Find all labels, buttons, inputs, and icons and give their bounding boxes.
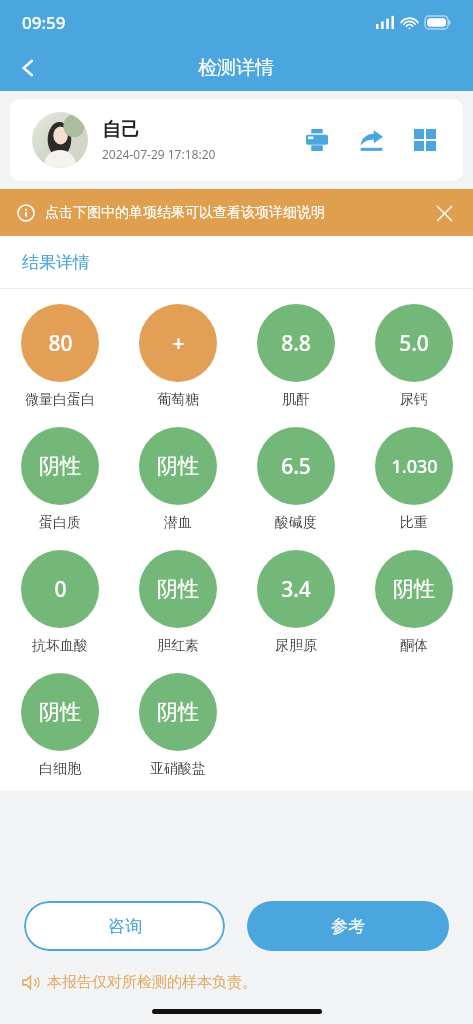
staticText: 1.030: [391, 454, 438, 479]
staticText: 微量白蛋白: [25, 391, 95, 409]
staticText: 5.0: [399, 329, 429, 358]
staticText: 咨询: [108, 916, 142, 937]
button[interactable]: 自己: [10, 99, 463, 181]
staticText: 阴性: [39, 453, 81, 479]
button[interactable]: 80: [0, 295, 119, 418]
button[interactable]: 8.8: [237, 295, 355, 418]
button[interactable]: 阴性: [0, 664, 119, 787]
button[interactable]: 6.5: [237, 418, 355, 541]
staticText: 结果详情: [22, 252, 90, 273]
button[interactable]: 1.030: [355, 418, 473, 541]
staticText: 参考: [331, 916, 365, 937]
button[interactable]: 阴性: [0, 418, 119, 541]
staticText: 阴性: [157, 576, 199, 602]
staticText: 亚硝酸盐: [150, 760, 206, 778]
button[interactable]: +: [119, 295, 237, 418]
button[interactable]: Print: [301, 124, 333, 156]
staticText: 本报告仅对所检测的样本负责。: [47, 973, 257, 992]
button[interactable]: 阴性: [119, 541, 237, 664]
button[interactable]: 咨询: [24, 901, 225, 951]
staticText: 比重: [400, 514, 428, 532]
staticText: 点击下图中的单项结果可以查看该项详细说明: [45, 204, 325, 222]
staticText: 阴性: [157, 453, 199, 479]
staticText: 自己: [102, 118, 140, 142]
staticText: 3.4: [281, 575, 311, 604]
staticText: 酸碱度: [275, 514, 317, 532]
button[interactable]: 3.4: [237, 541, 355, 664]
staticText: 09:59: [22, 11, 66, 34]
staticText: 6.5: [281, 452, 311, 481]
button[interactable]: 阴性: [119, 664, 237, 787]
button[interactable]: 0: [0, 541, 119, 664]
button[interactable]: 阴性: [119, 418, 237, 541]
staticText: 蛋白质: [39, 514, 81, 532]
staticText: 检测详情: [198, 56, 274, 80]
staticText: 葡萄糖: [157, 391, 199, 409]
staticText: 尿胆原: [275, 637, 317, 655]
staticText: 80: [48, 329, 73, 358]
button[interactable]: 阴性: [355, 541, 473, 664]
staticText: 尿钙: [400, 391, 428, 409]
button[interactable]: 5.0: [355, 295, 473, 418]
staticText: 阴性: [157, 699, 199, 725]
staticText: 0: [54, 575, 67, 604]
button[interactable]: Close: [429, 198, 459, 228]
staticText: 2024-07-29 17:18:20: [102, 146, 216, 162]
staticText: 抗坏血酸: [32, 637, 88, 655]
staticText: 白细胞: [39, 760, 81, 778]
staticText: 阴性: [39, 699, 81, 725]
staticText: 酮体: [400, 637, 428, 655]
staticText: 潜血: [164, 514, 192, 532]
staticText: 胆红素: [157, 637, 199, 655]
staticText: 肌酐: [282, 391, 310, 409]
button[interactable]: Back: [0, 44, 56, 91]
button[interactable]: Share: [355, 124, 387, 156]
button[interactable]: 参考: [247, 901, 449, 951]
staticText: +: [172, 329, 185, 358]
staticText: 8.8: [281, 329, 311, 358]
staticText: 阴性: [393, 576, 435, 602]
button[interactable]: Grid view: [409, 124, 441, 156]
